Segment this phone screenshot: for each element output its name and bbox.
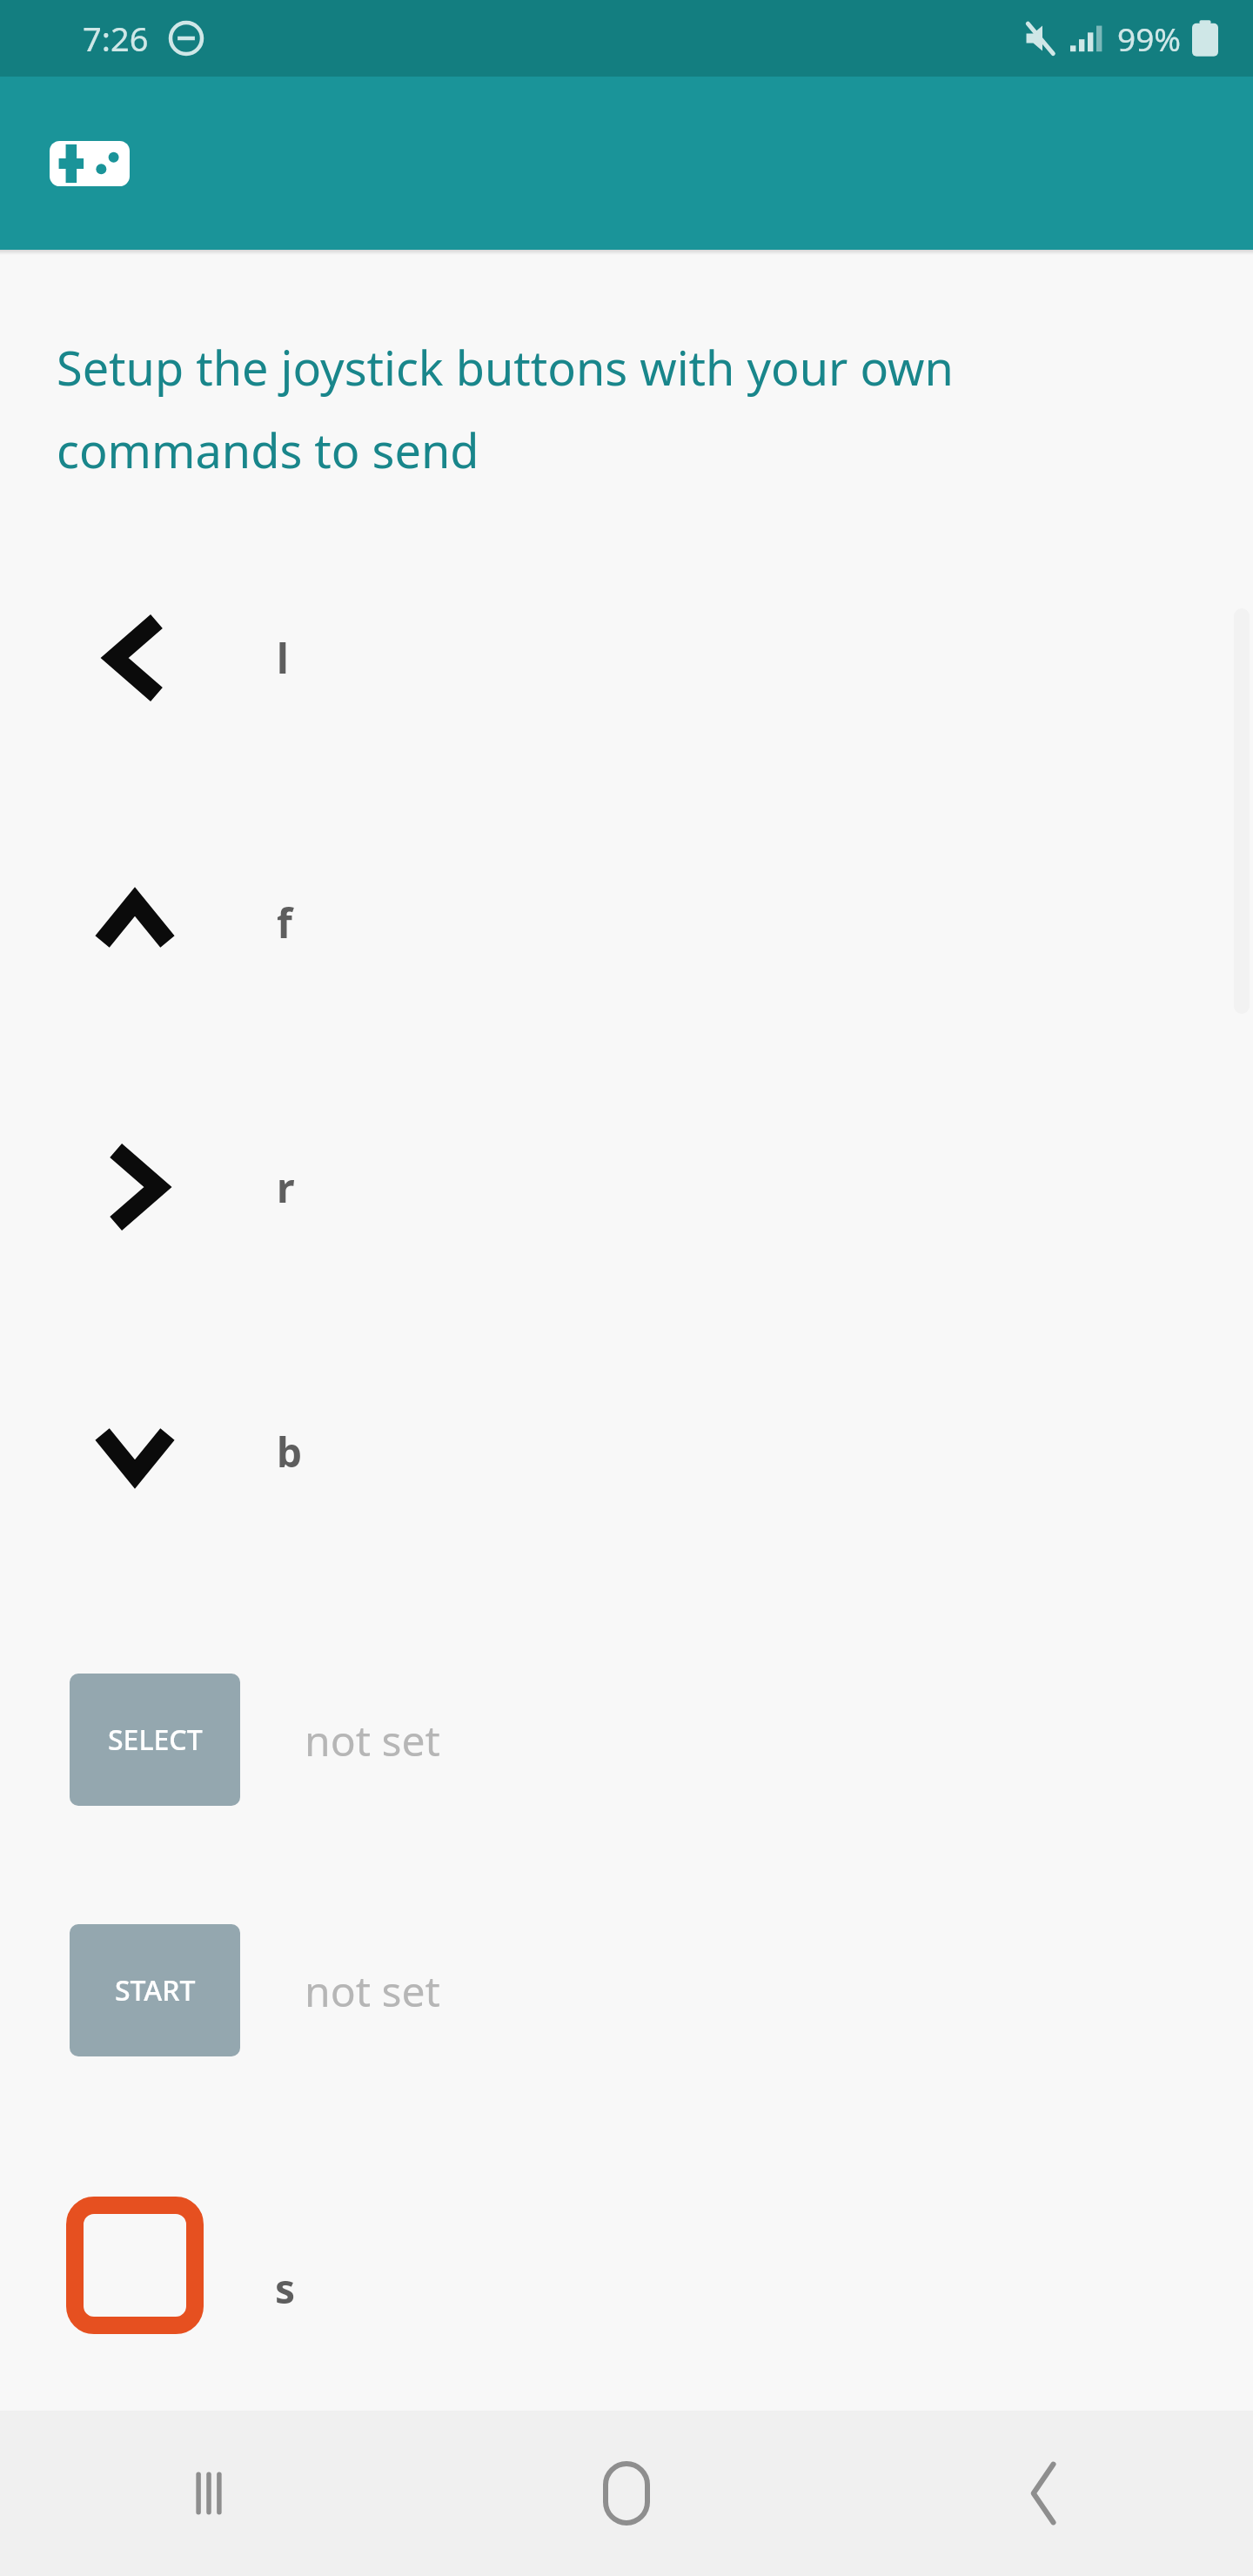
staticText: START	[115, 1971, 196, 2009]
other: Up	[0, 875, 261, 970]
staticText: Setup the joystick buttons with your own…	[57, 335, 1179, 481]
staticText: 7:26	[83, 16, 149, 61]
button[interactable]: Recents	[0, 2411, 418, 2576]
button[interactable]: START	[70, 1924, 240, 2056]
button[interactable]: Left	[0, 610, 1253, 706]
button[interactable]: Up	[0, 875, 1253, 970]
button[interactable]: Home	[418, 2411, 835, 2576]
staticText: not set	[305, 1962, 440, 2019]
other: Square button	[70, 2200, 200, 2331]
staticText: f	[277, 896, 292, 950]
button[interactable]: SELECT	[70, 1674, 240, 1806]
staticText: r	[277, 1160, 295, 1215]
other: Left	[0, 610, 261, 706]
staticText: s	[275, 2261, 296, 2316]
staticText: not set	[305, 1712, 440, 1768]
other: Right	[0, 1139, 261, 1235]
staticText: b	[277, 1425, 303, 1479]
staticText: SELECT	[108, 1721, 203, 1759]
staticText: 99%	[1117, 17, 1182, 60]
button[interactable]: Right	[0, 1139, 1253, 1235]
other: Down	[0, 1404, 261, 1499]
staticText: l	[277, 631, 289, 686]
button[interactable]: Gamepad	[42, 133, 137, 194]
button[interactable]: Square button	[0, 2196, 1253, 2335]
button[interactable]: Down	[0, 1404, 1253, 1499]
button[interactable]: Back	[835, 2411, 1253, 2576]
